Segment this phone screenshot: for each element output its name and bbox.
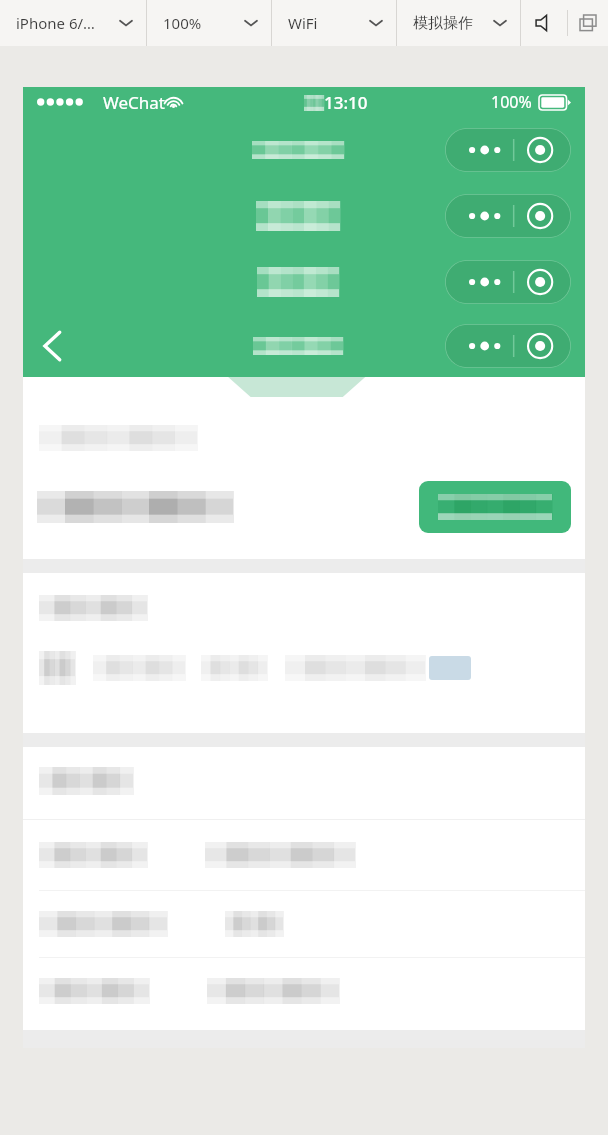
staticText: WiFi bbox=[288, 13, 318, 33]
staticText: iPhone 6/… bbox=[16, 13, 95, 33]
button[interactable]: 模拟操作 bbox=[397, 0, 520, 46]
staticText: 13:10 bbox=[324, 91, 368, 114]
staticText: WeChat bbox=[103, 91, 165, 114]
button[interactable] bbox=[23, 958, 585, 1030]
button[interactable]: Mini program menu bbox=[445, 260, 571, 304]
button[interactable]: 100% bbox=[147, 0, 271, 46]
button[interactable] bbox=[23, 891, 585, 957]
button[interactable]: Mini program menu bbox=[445, 324, 571, 368]
button[interactable]: Mute audio bbox=[521, 0, 567, 46]
button[interactable] bbox=[23, 820, 585, 890]
staticText: 100% bbox=[163, 13, 202, 33]
button[interactable] bbox=[429, 656, 471, 680]
staticText: 100% bbox=[491, 91, 532, 113]
button[interactable] bbox=[419, 481, 571, 533]
button[interactable]: Back bbox=[29, 323, 75, 369]
staticText: 模拟操作 bbox=[413, 14, 473, 33]
button[interactable]: WiFi bbox=[272, 0, 396, 46]
button[interactable]: Mini program menu bbox=[445, 128, 571, 172]
button[interactable]: iPhone 6/… bbox=[0, 0, 146, 46]
button[interactable]: Detach window bbox=[568, 0, 608, 46]
button[interactable]: Mini program menu bbox=[445, 194, 571, 238]
